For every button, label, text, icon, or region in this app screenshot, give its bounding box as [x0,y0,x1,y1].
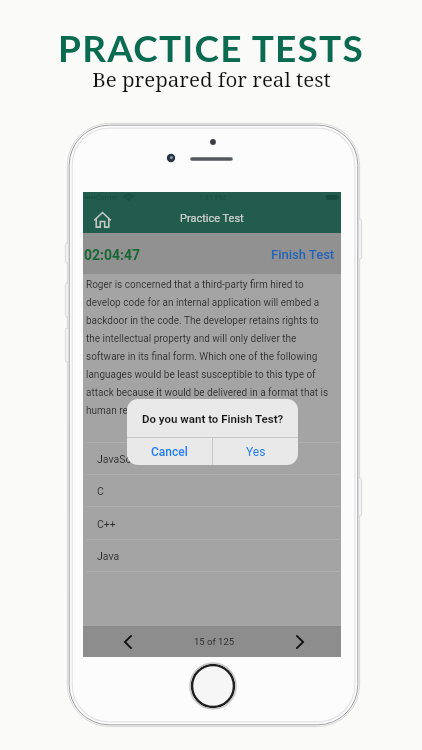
staticText: JavaScript [97,453,147,465]
button[interactable]: Finish Test [271,247,335,262]
button[interactable]: Cancel [127,438,212,465]
staticText: 02:04:47 [84,247,141,263]
staticText: Be prepared for real test [92,65,331,93]
staticText: C [97,485,104,497]
button[interactable]: Java [87,539,339,572]
button[interactable]: Yes [213,438,298,465]
staticText: 15 of 125 [194,636,235,647]
staticText: Do you want to Finish Test? [142,412,284,425]
staticText: PRACTICE TESTS [58,25,364,69]
button[interactable]: Previous question [117,631,139,653]
staticText: Carrier [96,193,118,202]
button[interactable]: C++ [87,507,339,540]
staticText: 1:31 PM [199,193,226,202]
button[interactable]: Home [91,208,113,230]
staticText: Practice Test [180,212,244,225]
staticText: Roger is concerned that a third-party fi… [86,279,334,417]
staticText: C++ [97,518,116,530]
staticText: Cancel [151,445,188,459]
button[interactable]: JavaScript [87,442,339,475]
button[interactable]: Next question [289,631,311,653]
staticText: Java [97,550,120,562]
button[interactable]: C [87,474,339,507]
staticText: Yes [246,445,266,459]
